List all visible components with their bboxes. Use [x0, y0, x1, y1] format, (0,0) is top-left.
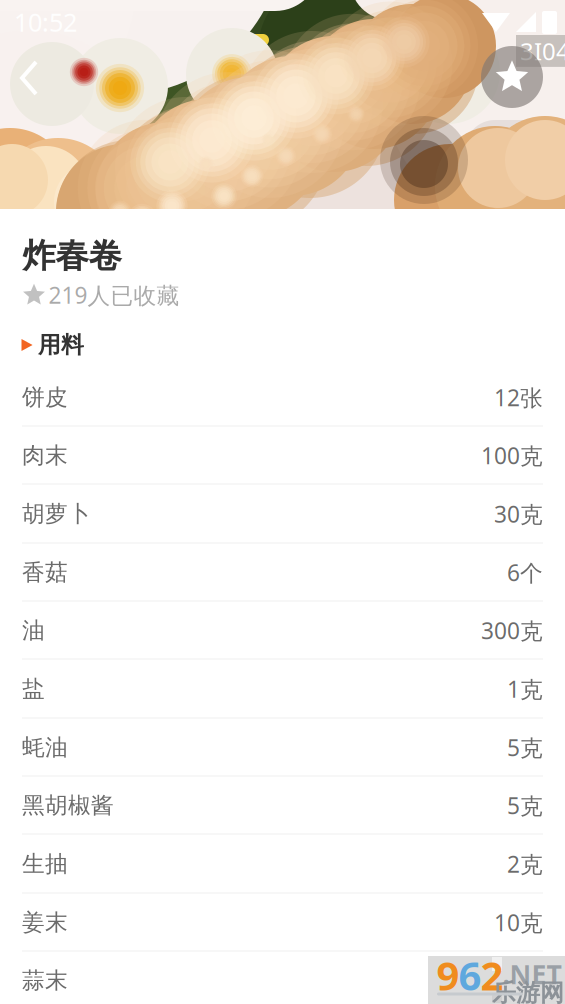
staticText: 10:52	[14, 5, 77, 39]
button[interactable]: 姜末	[0, 893, 565, 951]
button[interactable]: 油	[0, 601, 565, 659]
staticText: 生抽	[22, 850, 68, 878]
staticText: 用料	[38, 331, 84, 359]
staticText: 5克	[507, 732, 543, 762]
staticText: 300克	[481, 615, 543, 645]
staticText: 姜末	[22, 909, 68, 936]
staticText: 5克	[507, 965, 543, 995]
button[interactable]: 生抽	[0, 834, 565, 893]
staticText: .NET	[502, 956, 561, 992]
staticText: 12张	[494, 382, 543, 412]
staticText: 219人已收藏	[48, 280, 179, 310]
staticText: 黑胡椒酱	[22, 792, 114, 819]
staticText: 饼皮	[22, 384, 68, 411]
staticText: 乐游网	[492, 978, 564, 1004]
staticText: 2	[480, 948, 503, 1001]
staticText: 盐	[22, 675, 45, 703]
button[interactable]: 黑胡椒酱	[0, 776, 565, 834]
button[interactable]: 蚝油	[0, 718, 565, 776]
staticText: 胡萝卜	[22, 500, 91, 528]
button[interactable]: 肉末	[0, 426, 565, 484]
button[interactable]: 蒜末	[0, 951, 565, 1004]
button[interactable]: 盐	[0, 659, 565, 718]
button[interactable]: 饼皮	[0, 368, 565, 426]
button[interactable]: 香菇	[0, 543, 565, 601]
staticText: 30克	[494, 499, 543, 529]
staticText: 2克	[507, 849, 543, 879]
staticText: 6	[458, 948, 481, 1001]
staticText: 炸春卷	[22, 235, 121, 276]
button[interactable]: 收藏	[481, 46, 543, 108]
staticText: 3I04	[520, 35, 565, 67]
button[interactable]: 胡萝卜	[0, 484, 565, 543]
staticText: 蒜末	[22, 967, 68, 994]
staticText: 100克	[481, 440, 543, 470]
staticText: 香菇	[22, 559, 68, 586]
staticText: 5克	[507, 790, 543, 820]
button[interactable]: 返回	[8, 48, 70, 110]
staticText: 9	[436, 948, 459, 1001]
staticText: 蚝油	[22, 734, 68, 761]
staticText: 1克	[507, 674, 543, 704]
staticText: 油	[22, 617, 45, 644]
staticText: 肉末	[22, 442, 68, 469]
staticText: 6个	[507, 557, 543, 587]
staticText: 10克	[494, 907, 543, 937]
